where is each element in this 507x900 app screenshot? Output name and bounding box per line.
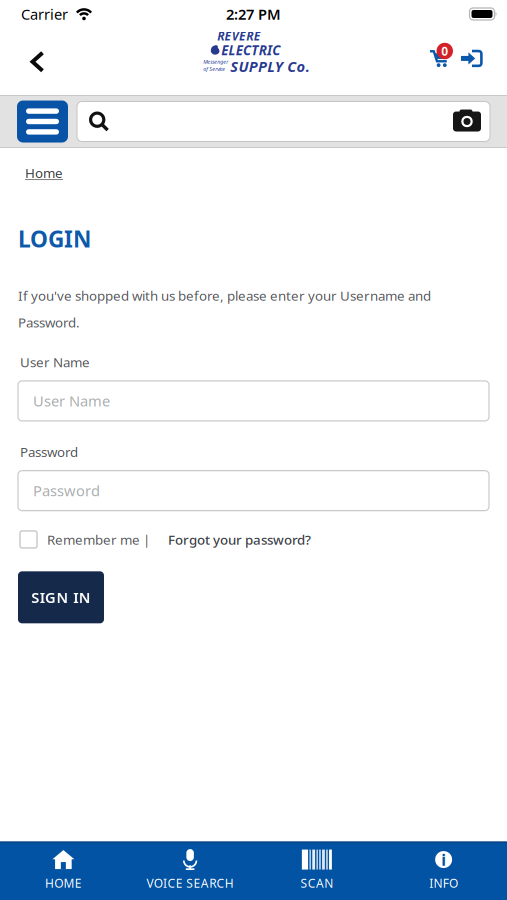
button[interactable]: Menu (17, 100, 68, 142)
staticText: 0 (441, 43, 448, 59)
button[interactable]: Search with camera (453, 110, 490, 133)
button[interactable]: SIGN IN (18, 571, 104, 623)
staticText: User Name (33, 391, 110, 411)
staticText: Home (25, 164, 63, 182)
staticText: REVERE (217, 28, 261, 44)
staticText: ELECTRIC (221, 41, 280, 59)
staticText: Forgot your password? (168, 531, 311, 548)
staticText: INFO (429, 875, 458, 891)
staticText: Messenger of Service (203, 58, 228, 72)
staticText: If you've shopped with us before, please… (18, 287, 431, 331)
staticText: SIGN IN (31, 588, 91, 607)
staticText: SUPPLY Co. (230, 56, 310, 76)
staticText: LOGIN (18, 224, 91, 254)
button[interactable]: Forgot your password? (150, 531, 311, 548)
staticText: Password (33, 481, 100, 500)
staticText: 2:27 PM (226, 4, 281, 24)
button[interactable]: Home (25, 164, 63, 182)
staticText: SCAN (300, 875, 333, 891)
button[interactable]: VOICE SEARCH (127, 849, 254, 891)
staticText: Password (20, 443, 78, 461)
staticText: Remember me | (47, 531, 150, 548)
button[interactable]: Cart (430, 37, 453, 68)
staticText: User Name (20, 353, 90, 371)
staticText: VOICE SEARCH (146, 875, 234, 891)
button[interactable]: HOME (0, 849, 127, 891)
button[interactable]: Remember me | (20, 531, 150, 548)
staticText: i (441, 849, 446, 870)
staticText: HOME (45, 875, 82, 891)
button[interactable]: SCAN (253, 849, 380, 891)
button[interactable]: Sign in (453, 37, 507, 68)
button[interactable]: Back (0, 37, 65, 73)
staticText: Carrier (21, 4, 68, 24)
button[interactable]: i (380, 849, 507, 891)
